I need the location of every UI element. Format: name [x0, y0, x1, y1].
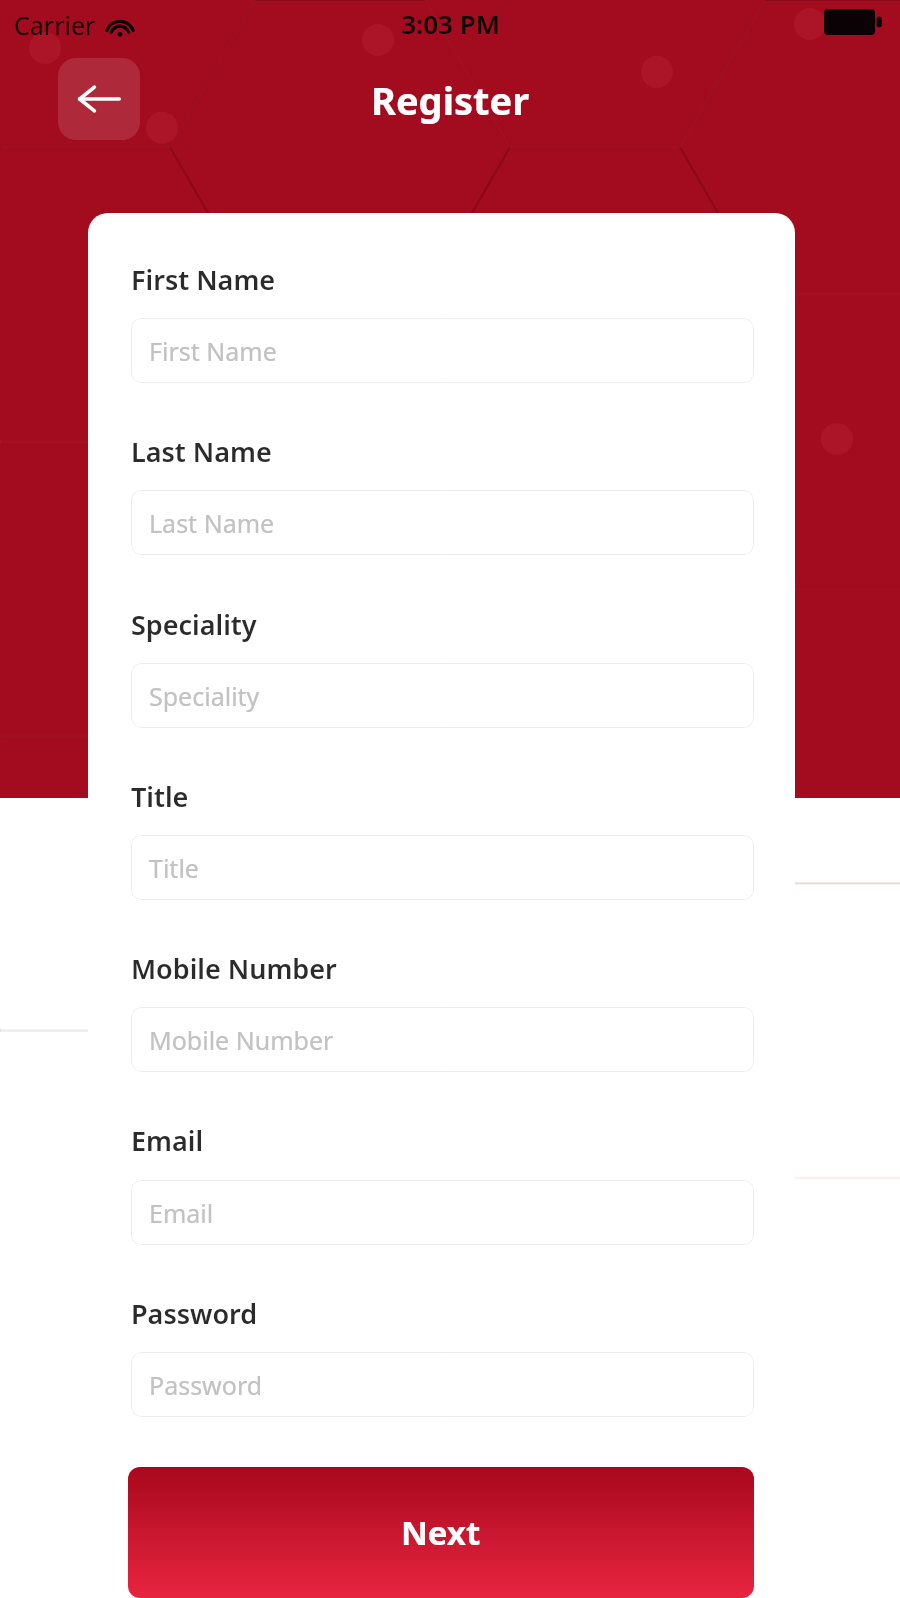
button[interactable]: Speciality	[131, 663, 754, 728]
staticText: Title	[149, 851, 199, 885]
staticText: Email	[131, 1122, 204, 1158]
staticText: First Name	[149, 334, 277, 368]
staticText: Last Name	[149, 506, 275, 540]
staticText: Next	[401, 1510, 481, 1555]
staticText: Carrier	[14, 8, 96, 42]
staticText: Register	[371, 74, 530, 124]
button[interactable]: Password	[131, 1352, 754, 1417]
button[interactable]: Email	[131, 1180, 754, 1245]
staticText: Mobile Number	[149, 1023, 334, 1057]
button[interactable]: Title	[131, 835, 754, 900]
button[interactable]: Next	[128, 1467, 754, 1598]
staticText: Password	[149, 1368, 263, 1402]
staticText: First Name	[131, 261, 276, 297]
button[interactable]: Last Name	[131, 490, 754, 555]
staticText: Last Name	[131, 433, 272, 469]
staticText: Speciality	[131, 606, 257, 642]
button[interactable]: Back	[58, 58, 140, 140]
button[interactable]: Mobile Number	[131, 1007, 754, 1072]
staticText: Title	[131, 778, 189, 814]
staticText: 3:03 PM	[401, 6, 500, 41]
staticText: Email	[149, 1196, 214, 1230]
staticText: Password	[131, 1295, 258, 1331]
button[interactable]: First Name	[131, 318, 754, 383]
staticText: Speciality	[149, 679, 260, 713]
staticText: Mobile Number	[131, 950, 337, 986]
